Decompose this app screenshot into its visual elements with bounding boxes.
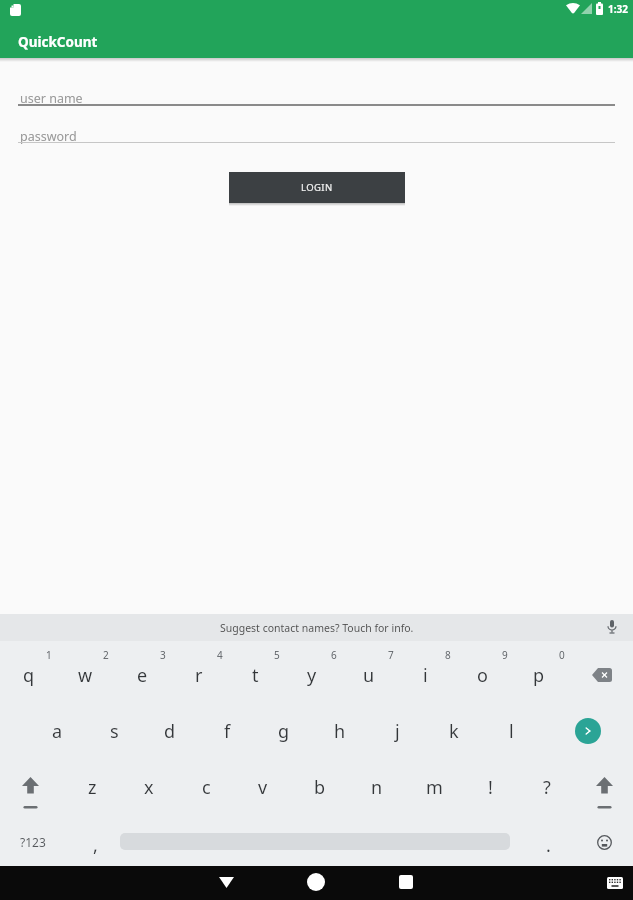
- staticText: v: [258, 775, 268, 800]
- staticText: n: [371, 775, 383, 800]
- staticText: 1: [46, 648, 52, 662]
- staticText: 1:32: [608, 2, 628, 16]
- staticText: z: [88, 775, 97, 800]
- staticText: 5: [274, 648, 280, 662]
- staticText: ?123: [20, 834, 46, 850]
- button[interactable]: n: [349, 762, 405, 812]
- staticText: d: [164, 719, 176, 744]
- staticText: l: [509, 719, 514, 744]
- staticText: Suggest contact names? Touch for info.: [220, 621, 414, 635]
- staticText: p: [533, 663, 545, 688]
- staticText: r: [195, 663, 203, 688]
- button[interactable]: x: [121, 762, 177, 812]
- staticText: e: [137, 663, 148, 688]
- button[interactable]: m: [406, 762, 462, 812]
- button[interactable]: r: [171, 650, 227, 700]
- staticText: b: [314, 775, 326, 800]
- staticText: u: [363, 663, 375, 688]
- staticText: 0: [559, 648, 565, 662]
- staticText: t: [252, 663, 259, 688]
- button[interactable]: p: [511, 650, 567, 700]
- staticText: 8: [445, 648, 451, 662]
- staticText: user name: [20, 90, 83, 107]
- button[interactable]: y: [284, 650, 340, 700]
- staticText: k: [449, 719, 459, 744]
- staticText: 3: [160, 648, 166, 662]
- staticText: password: [20, 128, 77, 145]
- button[interactable]: [576, 762, 632, 812]
- staticText: s: [110, 719, 119, 744]
- button[interactable]: LOGIN: [229, 172, 405, 203]
- staticText: w: [78, 663, 93, 688]
- staticText: i: [423, 663, 428, 688]
- staticText: 4: [217, 648, 223, 662]
- staticText: g: [278, 719, 290, 744]
- button[interactable]: g: [256, 706, 312, 756]
- staticText: 2: [103, 648, 109, 662]
- staticText: 6: [331, 648, 337, 662]
- button[interactable]: k: [426, 706, 482, 756]
- staticText: o: [477, 663, 488, 688]
- button[interactable]: [574, 650, 630, 700]
- button[interactable]: [204, 865, 248, 899]
- button[interactable]: c: [178, 762, 234, 812]
- button[interactable]: l: [483, 706, 539, 756]
- button[interactable]: [606, 620, 618, 635]
- button[interactable]: e: [114, 650, 170, 700]
- staticText: y: [307, 663, 317, 688]
- button[interactable]: [582, 820, 626, 864]
- staticText: ,: [93, 833, 98, 858]
- button[interactable]: .: [528, 821, 568, 869]
- button[interactable]: i: [397, 650, 453, 700]
- button[interactable]: j: [369, 706, 425, 756]
- button[interactable]: ,: [75, 821, 115, 869]
- button[interactable]: Suggest contact names? Touch for info.: [0, 614, 633, 641]
- button[interactable]: q: [1, 650, 57, 700]
- staticText: 7: [388, 648, 394, 662]
- button[interactable]: a: [29, 706, 85, 756]
- button[interactable]: z: [64, 762, 120, 812]
- staticText: QuickCount: [18, 33, 98, 51]
- staticText: 9: [502, 648, 508, 662]
- staticText: q: [23, 663, 35, 688]
- button[interactable]: u: [341, 650, 397, 700]
- staticText: !: [488, 775, 493, 800]
- staticText: LOGIN: [301, 181, 333, 194]
- button[interactable]: h: [312, 706, 368, 756]
- staticText: h: [334, 719, 346, 744]
- staticText: x: [144, 775, 154, 800]
- button[interactable]: t: [227, 650, 283, 700]
- button[interactable]: [601, 871, 629, 895]
- button[interactable]: f: [199, 706, 255, 756]
- button[interactable]: [575, 718, 601, 744]
- button[interactable]: [294, 865, 338, 899]
- staticText: ?: [543, 775, 551, 800]
- button[interactable]: [384, 865, 428, 899]
- button[interactable]: s: [86, 706, 142, 756]
- staticText: f: [224, 719, 231, 744]
- button[interactable]: ?123: [3, 818, 63, 866]
- staticText: c: [202, 775, 211, 800]
- button[interactable]: w: [57, 650, 113, 700]
- button[interactable]: d: [142, 706, 198, 756]
- button[interactable]: !: [462, 762, 518, 812]
- staticText: j: [395, 719, 400, 744]
- button[interactable]: [2, 762, 58, 812]
- button[interactable]: v: [235, 762, 291, 812]
- button[interactable]: o: [454, 650, 510, 700]
- button[interactable]: ?: [519, 762, 575, 812]
- staticText: a: [52, 719, 63, 744]
- staticText: .: [546, 833, 551, 858]
- staticText: m: [426, 775, 443, 800]
- button[interactable]: b: [292, 762, 348, 812]
